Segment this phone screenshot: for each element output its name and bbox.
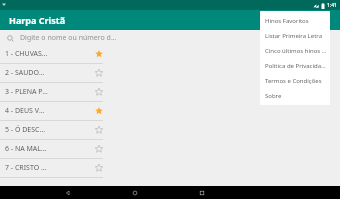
button[interactable]: Termos e Condições xyxy=(260,73,330,88)
staticText: 4 - DEUS VELARÁ POR TI xyxy=(5,106,48,116)
button[interactable]: Política de Privacidade xyxy=(260,58,330,73)
button[interactable]: Listar Primeira Letra xyxy=(260,28,330,43)
button[interactable]: Remove from favorites xyxy=(92,104,106,118)
staticText: Listar Primeira Letra xyxy=(265,32,323,40)
button[interactable]: Remove from favorites xyxy=(92,47,106,61)
button[interactable]: 6 - NA MALDIÇÃO DA CRUZ xyxy=(0,140,340,158)
button[interactable]: Sobre xyxy=(260,88,330,103)
staticText: Sobre xyxy=(265,92,282,100)
staticText: 3 - PLENA PAZ xyxy=(5,87,48,97)
button[interactable]: Digite o nome ou número d... xyxy=(0,30,340,45)
button[interactable]: 2 - SAUDOSA LEMBRANÇA xyxy=(0,64,340,82)
button[interactable]: Add to favorites xyxy=(92,123,106,137)
button[interactable]: Recent apps xyxy=(195,186,208,199)
staticText: Hinos Favoritos xyxy=(265,17,309,25)
button[interactable]: 4 - DEUS VELARÁ POR TI xyxy=(0,102,340,120)
button[interactable]: Hinos Favoritos xyxy=(260,13,330,28)
button[interactable]: Back xyxy=(61,186,74,199)
staticText: 5 - Ó DESCE, FOGO SANTO xyxy=(5,125,48,135)
button[interactable]: Add to favorites xyxy=(92,85,106,99)
button[interactable]: 1 - CHUVAS DE GRAÇA xyxy=(0,45,340,63)
staticText: 6 - NA MALDIÇÃO DA CRUZ xyxy=(5,144,48,154)
staticText: 7 - CRISTO CURA, SIM xyxy=(5,163,48,173)
staticText: Termos e Condições xyxy=(265,77,322,85)
button[interactable]: Add to favorites xyxy=(92,161,106,175)
staticText: 1:41 xyxy=(327,2,337,9)
button[interactable]: Home xyxy=(128,186,141,199)
button[interactable]: Add to favorites xyxy=(92,142,106,156)
button[interactable]: Add to favorites xyxy=(92,66,106,80)
button[interactable]: More options xyxy=(320,13,334,27)
staticText: Harpa Cristã xyxy=(9,14,66,26)
staticText: 2 - SAUDOSA LEMBRANÇA xyxy=(5,68,48,78)
button[interactable]: 5 - Ó DESCE, FOGO SANTO xyxy=(0,121,340,139)
button[interactable]: 3 - PLENA PAZ xyxy=(0,83,340,101)
staticText: Digite o nome ou número d... xyxy=(20,33,117,43)
staticText: Cinco últimos hinos abertos xyxy=(265,47,327,55)
button[interactable]: Cinco últimos hinos abertos xyxy=(260,43,330,58)
button[interactable]: 7 - CRISTO CURA, SIM xyxy=(0,159,340,177)
staticText: Política de Privacidade xyxy=(265,62,327,70)
staticText: 1 - CHUVAS DE GRAÇA xyxy=(5,49,48,59)
